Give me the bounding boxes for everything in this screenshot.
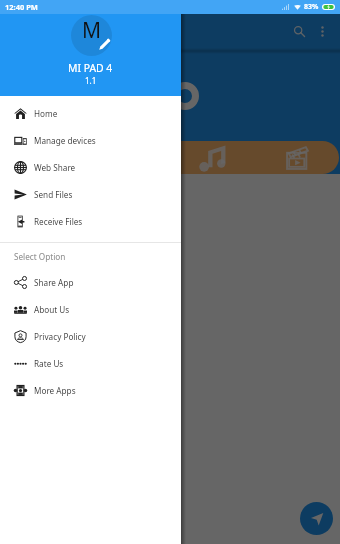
button[interactable]: Web Share <box>0 154 181 181</box>
staticText: Home <box>34 108 58 119</box>
button[interactable]: Search <box>284 16 314 46</box>
staticText: More Apps <box>34 385 76 396</box>
button[interactable]: Receive Files <box>0 208 181 235</box>
staticText: 1.1 <box>85 75 97 86</box>
button[interactable]: Videos <box>282 142 314 174</box>
button[interactable]: About Us <box>0 296 181 323</box>
staticText: Select Option <box>14 251 66 262</box>
staticText: Privacy Policy <box>34 331 86 342</box>
button[interactable]: Home <box>0 100 181 127</box>
staticText: 12:40 PM <box>5 2 38 12</box>
button[interactable]: Send <box>300 502 333 535</box>
button[interactable]: Music <box>196 142 228 174</box>
staticText: Rate Us <box>34 358 64 369</box>
staticText: Manage devices <box>34 135 96 146</box>
staticText: Share App <box>34 277 74 288</box>
button[interactable]: More Apps <box>0 377 181 404</box>
staticText: M <box>82 16 102 45</box>
staticText: 83% <box>304 2 319 12</box>
staticText: Send Files <box>34 189 73 200</box>
button[interactable]: Manage devices <box>0 127 181 154</box>
button[interactable]: Rate Us <box>0 350 181 377</box>
button[interactable]: Edit profile <box>71 15 112 56</box>
staticText: About Us <box>34 304 70 315</box>
staticText: Receive Files <box>34 216 83 227</box>
button[interactable]: More options <box>307 16 337 46</box>
button[interactable]: Share App <box>0 269 181 296</box>
staticText: MI PAD 4 <box>68 61 113 75</box>
button[interactable]: Privacy Policy <box>0 323 181 350</box>
staticText: Web Share <box>34 162 76 173</box>
button[interactable]: Send Files <box>0 181 181 208</box>
